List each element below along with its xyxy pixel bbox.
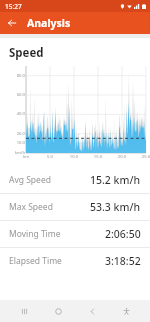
staticText: 20.0 [2,131,25,137]
staticText: km [19,154,33,160]
button[interactable]: Recent apps [14,301,34,321]
staticText: Elapsed Time [9,255,62,267]
staticText: Avg Speed [9,174,51,186]
staticText: 40.0 [2,111,25,117]
staticText: km/h [2,150,25,156]
staticText: 53.3 km/h [90,200,141,214]
button[interactable]: Back [3,14,21,32]
staticText: 60.0 [2,92,25,98]
button[interactable]: Home [48,301,68,321]
button[interactable]: Elapsed Time [0,248,150,274]
button[interactable]: Accessibility [116,301,136,321]
staticText: 5.0 [43,154,57,160]
button[interactable]: Avg Speed [0,167,150,193]
button[interactable]: Back [82,301,102,321]
staticText: 3:18:52 [105,254,141,268]
staticText: 15:27 [5,2,22,11]
staticText: 2:06:50 [105,227,141,241]
staticText: Speed [9,45,44,61]
staticText: 15.2 km/h [90,173,141,187]
staticText: Moving Time [9,228,61,240]
button[interactable]: Max Speed [0,194,150,220]
staticText: 25.0 [139,154,150,160]
staticText: 10.0 [2,140,25,146]
staticText: 20.0 [115,154,129,160]
staticText: Analysis [27,16,71,30]
staticText: Max Speed [9,201,53,213]
staticText: 15.0 [91,154,105,160]
button[interactable]: Moving Time [0,221,150,247]
staticText: 10.0 [67,154,81,160]
staticText: 80.0 [2,73,25,79]
